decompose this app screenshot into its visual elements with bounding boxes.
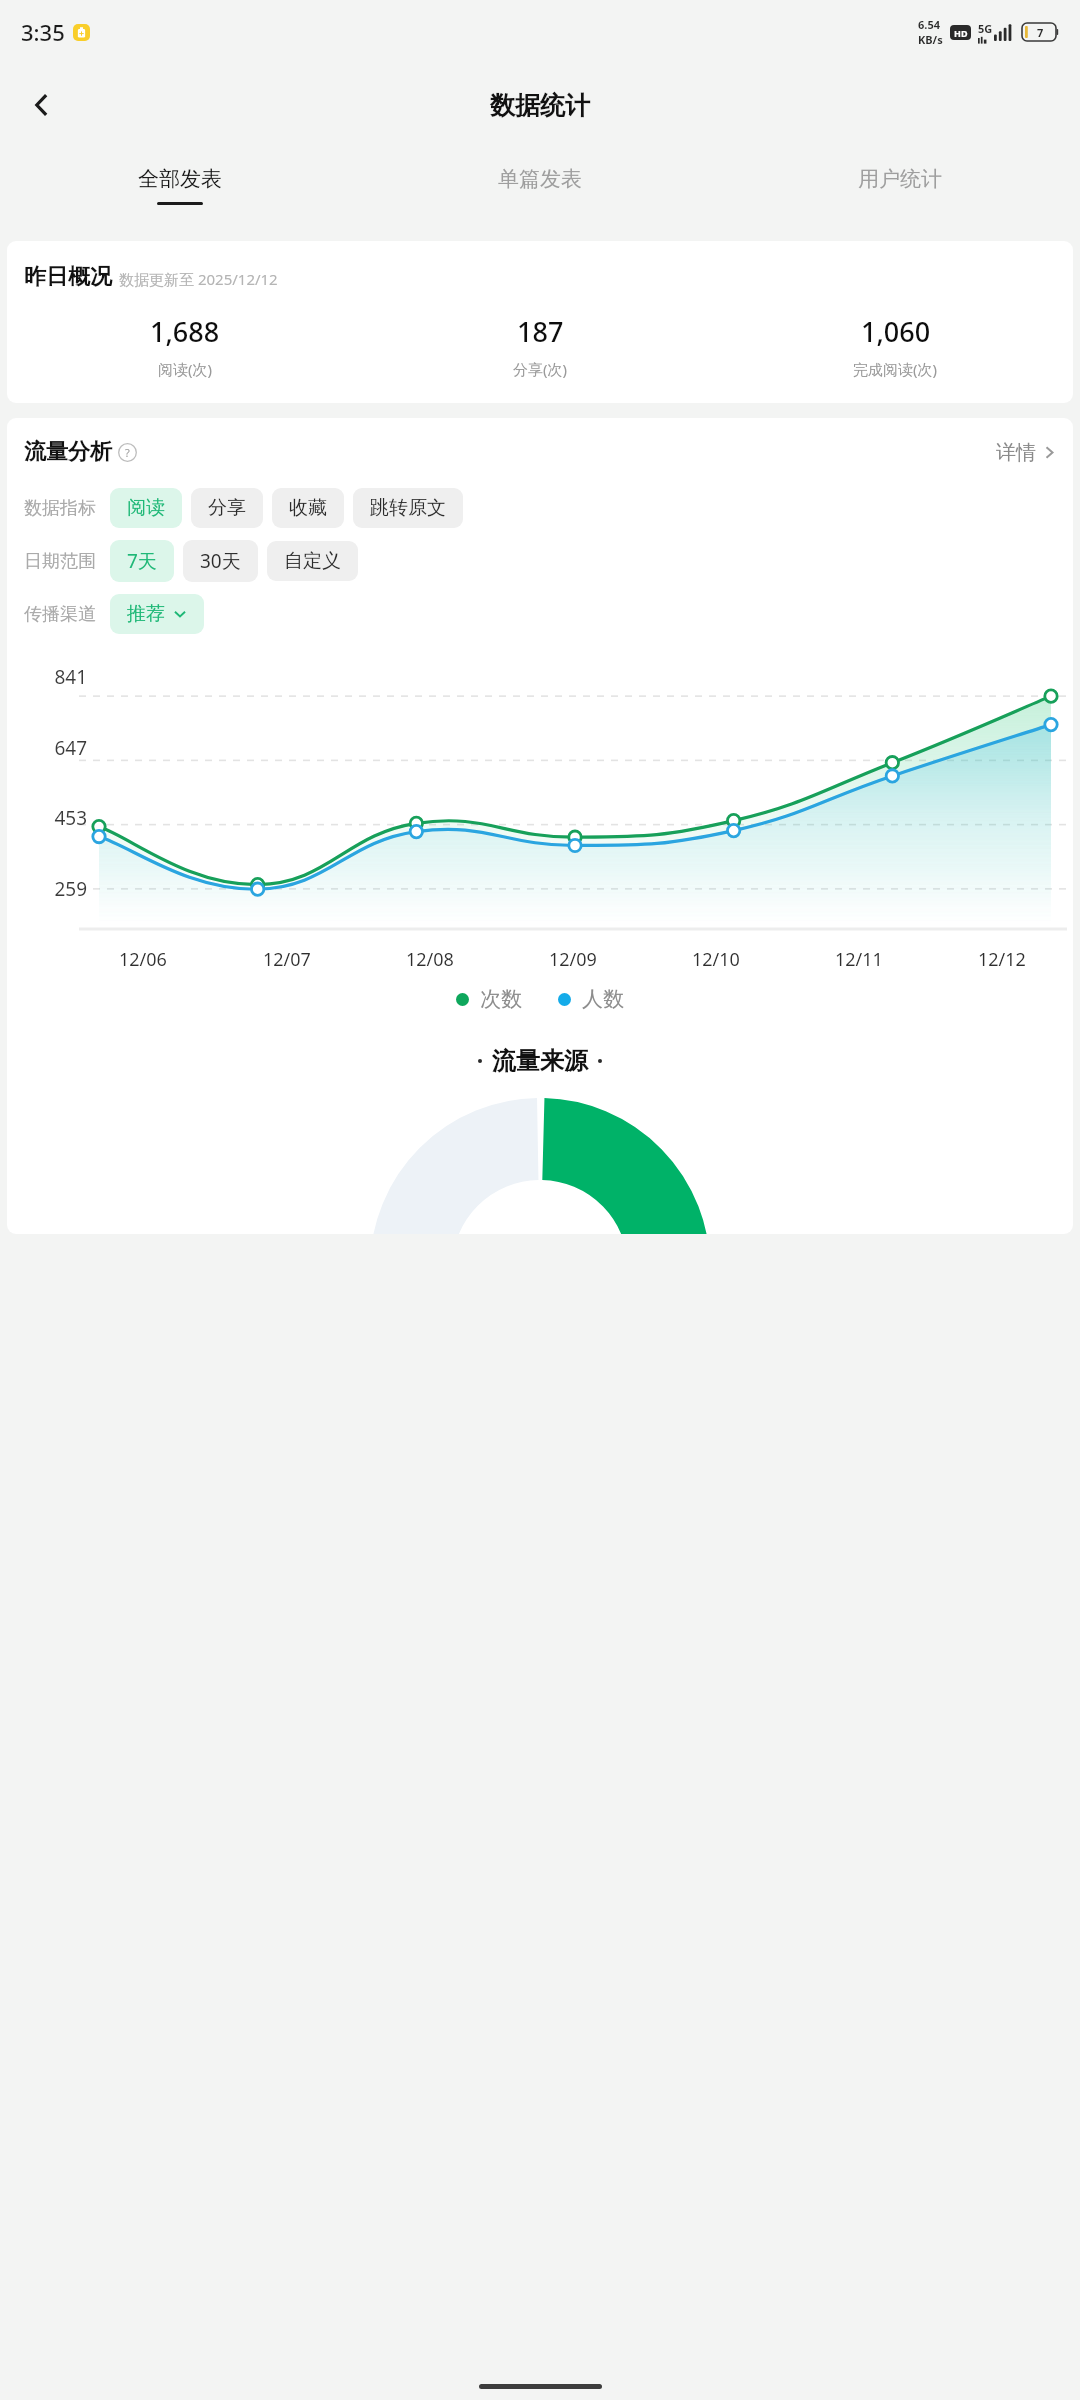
button[interactable]: 全部发表 [0, 147, 360, 223]
button[interactable]: 1,688 [7, 313, 363, 379]
staticText: 数据指标 [24, 497, 96, 520]
staticText: 259 [13, 876, 87, 902]
staticText: 数据统计 [490, 90, 590, 121]
staticText: HD [954, 27, 968, 39]
staticText: 流量来源 [492, 1046, 588, 1076]
button[interactable]: 昨日概况 [7, 241, 1073, 403]
staticText: 841 [13, 664, 87, 690]
staticText: 人数 [582, 986, 624, 1012]
staticText: 7天 [127, 548, 157, 574]
button[interactable]: 详情 [996, 440, 1057, 465]
staticText: 流量分析 [24, 438, 112, 466]
staticText: 6.54 [918, 17, 940, 32]
staticText: 次数 [480, 986, 522, 1012]
staticText: 自定义 [284, 549, 341, 573]
staticText: 12/06 [119, 947, 167, 972]
button[interactable]: 阅读 [110, 488, 182, 528]
staticText: 完成阅读(次) [853, 359, 938, 379]
button[interactable]: 分享 [191, 488, 263, 528]
button[interactable]: Back [14, 77, 70, 133]
staticText: 12/11 [835, 947, 883, 972]
staticText: 12/12 [978, 947, 1026, 972]
staticText: 12/10 [692, 947, 740, 972]
staticText: 1,688 [150, 313, 220, 350]
staticText: 187 [517, 313, 564, 350]
staticText: 阅读(次) [158, 359, 213, 379]
staticText: 收藏 [289, 496, 327, 520]
staticText: 12/07 [263, 947, 311, 972]
staticText: 1,060 [861, 313, 931, 350]
staticText: 12/08 [406, 947, 454, 972]
button[interactable]: 收藏 [272, 488, 344, 528]
staticText: 7 [1037, 25, 1044, 40]
staticText: 全部发表 [138, 166, 222, 192]
staticText: 5G [978, 21, 993, 36]
staticText: 分享 [208, 496, 246, 520]
staticText: 12/09 [549, 947, 597, 972]
staticText: 453 [13, 805, 87, 831]
staticText: 30天 [200, 548, 241, 574]
button[interactable]: 自定义 [267, 541, 358, 581]
staticText: ? [125, 445, 130, 460]
staticText: 647 [13, 735, 87, 761]
button[interactable]: 帮助 [118, 443, 137, 462]
staticText: 昨日概况 [24, 263, 112, 291]
staticText: 传播渠道 [24, 603, 96, 626]
button[interactable]: 单篇发表 [360, 147, 720, 223]
staticText: 分享(次) [513, 359, 568, 379]
button[interactable]: 次数 [456, 986, 522, 1012]
button[interactable]: 人数 [558, 986, 624, 1012]
staticText: KB/s [918, 32, 943, 47]
button[interactable]: 跳转原文 [353, 488, 463, 528]
button[interactable]: 1,060 [718, 313, 1073, 379]
staticText: 推荐 [127, 602, 165, 626]
staticText: 详情 [996, 440, 1036, 465]
staticText: 阅读 [127, 496, 165, 520]
button[interactable]: 30天 [183, 540, 258, 582]
button[interactable]: 推荐 [110, 594, 204, 634]
button[interactable]: 用户统计 [720, 147, 1080, 223]
staticText: 跳转原文 [370, 496, 446, 520]
staticText: 数据更新至 2025/12/12 [119, 269, 278, 289]
staticText: 用户统计 [858, 166, 942, 192]
staticText: 3:35 [21, 17, 65, 47]
staticText: 单篇发表 [498, 166, 582, 192]
staticText: 日期范围 [24, 550, 96, 573]
button[interactable]: 187 [363, 313, 718, 379]
button[interactable]: 7天 [110, 540, 174, 582]
